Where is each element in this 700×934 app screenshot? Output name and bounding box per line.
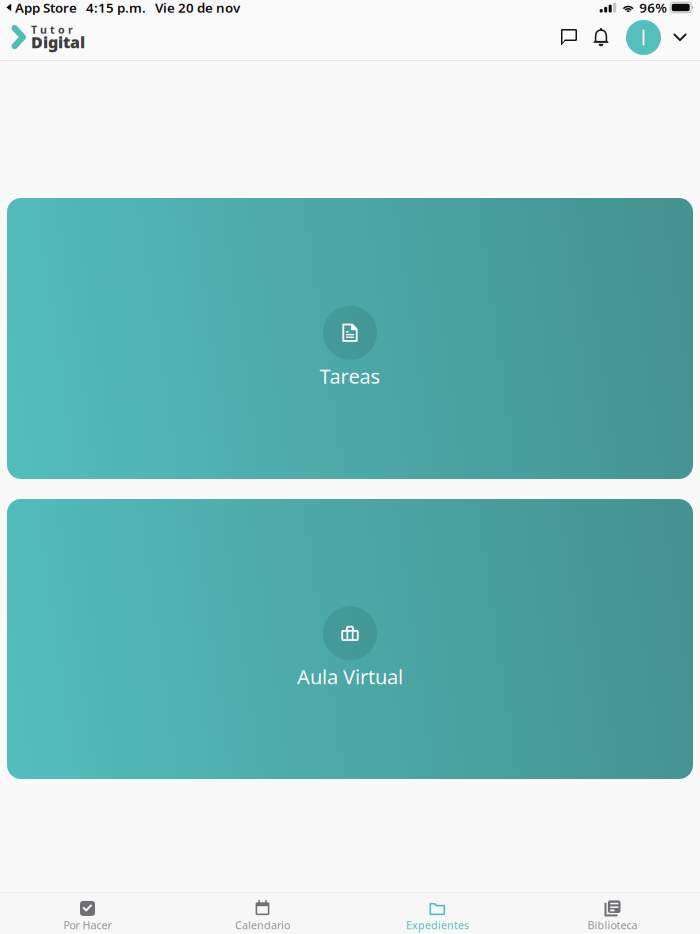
staticText: Aula Virtual [297,663,403,690]
staticText: 96% [639,0,667,16]
staticText: Biblioteca [587,918,637,932]
button[interactable]: Más opciones [665,23,695,51]
button[interactable]: Mensajes [554,22,584,53]
button[interactable]: Tareas [7,198,693,479]
button[interactable]: Aula Virtual [7,499,693,779]
button[interactable]: Expedientes [350,893,525,934]
button[interactable]: Por Hacer [0,893,175,934]
staticText: Calendario [235,918,290,932]
staticText: Vie 20 de nov [146,0,240,16]
staticText: App Store [12,0,77,16]
staticText: Por Hacer [63,918,111,932]
staticText: 4:15 p.m. [77,0,146,16]
button[interactable]: Biblioteca [525,893,700,934]
button[interactable]: Calendario [175,893,350,934]
staticText: Expedientes [406,918,469,932]
staticText: T u t o r [31,22,73,37]
button[interactable]: Notificaciones [584,20,618,54]
staticText: Tareas [319,363,380,389]
staticText: Digital [31,31,85,53]
button[interactable]: Cuenta [626,20,661,55]
